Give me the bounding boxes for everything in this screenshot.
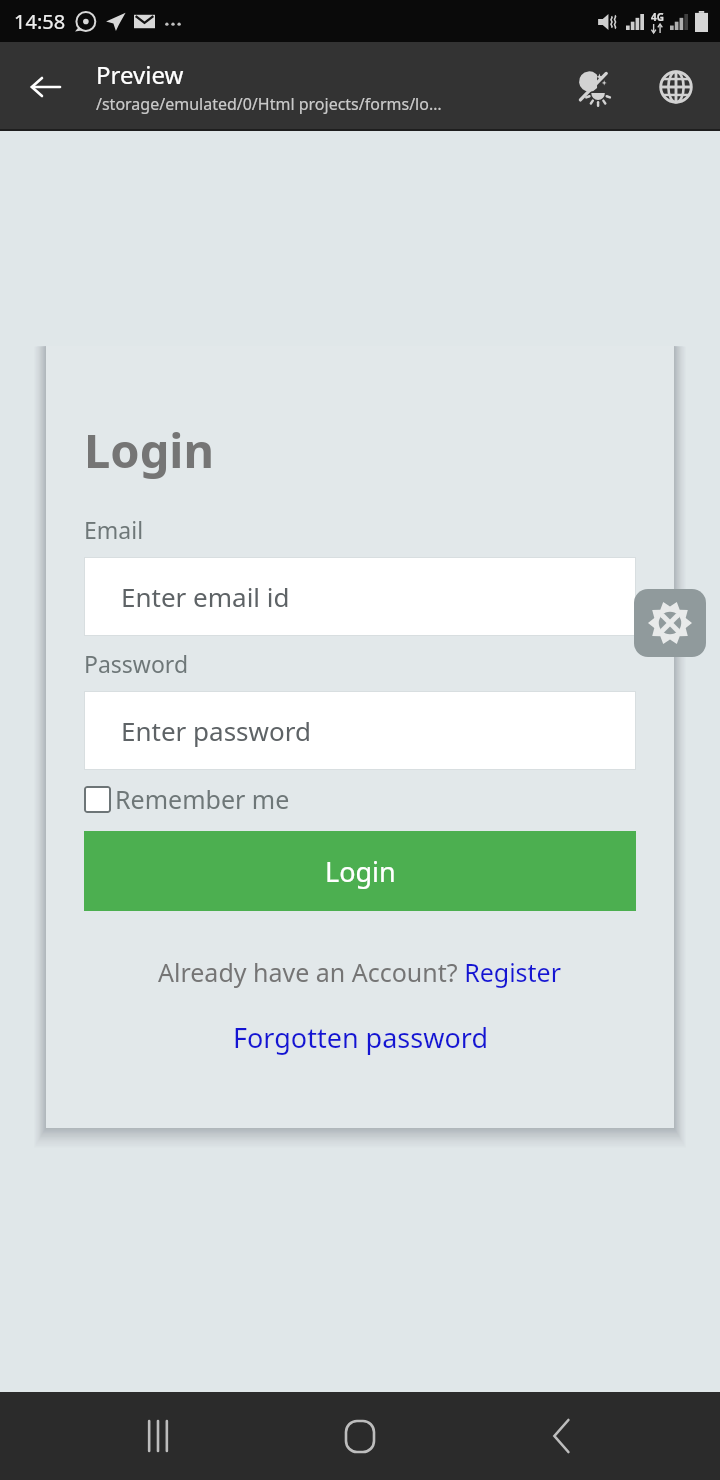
staticText: Password (84, 648, 189, 679)
button[interactable]: Recents (114, 1392, 202, 1480)
button[interactable]: Developer tools (634, 589, 706, 657)
staticText: 4G (651, 10, 664, 24)
staticText: Email (84, 514, 144, 545)
staticText: /storage/emulated/0/Html projects/forms/… (96, 93, 442, 115)
staticText: 14:58 (14, 8, 66, 35)
staticText: Enter password (121, 713, 311, 748)
staticText: Login (84, 418, 214, 482)
button[interactable]: Enter password (84, 691, 636, 770)
staticText: Forgotten password (233, 1019, 488, 1056)
button[interactable]: Already have an Account? Register (84, 955, 636, 989)
staticText: Enter email id (121, 579, 290, 614)
staticText: Preview (96, 58, 184, 91)
staticText: Remember me (115, 782, 290, 816)
button[interactable]: Remember me (84, 782, 290, 816)
button[interactable]: Back (22, 64, 68, 110)
button[interactable]: Toggle night mode (568, 61, 620, 113)
button[interactable]: Forgotten password (84, 1019, 636, 1056)
staticText: Already have an Account? Register (158, 955, 562, 989)
button[interactable]: Back (518, 1392, 606, 1480)
button[interactable]: Login (84, 831, 636, 911)
button[interactable]: Home (316, 1392, 404, 1480)
staticText: Login (325, 853, 396, 890)
button[interactable]: Open in browser (650, 61, 702, 113)
button[interactable]: Enter email id (84, 557, 636, 636)
